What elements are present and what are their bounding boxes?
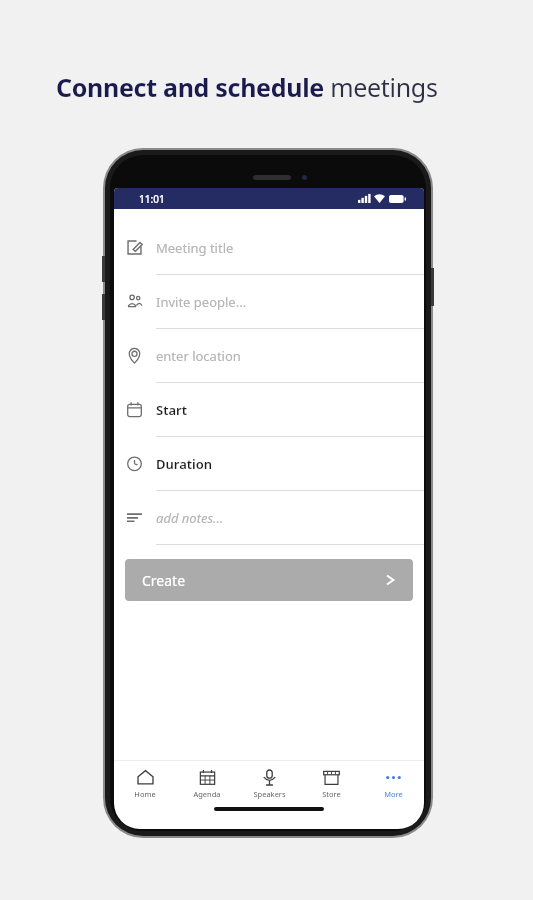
staticText: Duration xyxy=(156,455,213,473)
button[interactable]: Speakers xyxy=(238,761,300,807)
button[interactable]: Home xyxy=(114,761,176,807)
staticText: 11:01 xyxy=(139,192,165,206)
button[interactable]: enter location xyxy=(114,329,424,383)
button[interactable]: Start xyxy=(114,383,424,437)
staticText: Connect and schedule meetings xyxy=(56,70,438,104)
staticText: enter location xyxy=(156,347,241,365)
staticText: Agenda xyxy=(193,789,221,799)
button[interactable]: Duration xyxy=(114,437,424,491)
staticText: Invite people... xyxy=(156,293,247,311)
staticText: add notes... xyxy=(156,509,224,527)
staticText: Speakers xyxy=(253,789,286,799)
staticText: Store xyxy=(322,789,341,799)
staticText: Home xyxy=(134,789,156,799)
button[interactable]: Create xyxy=(125,559,413,601)
staticText: Create xyxy=(142,571,186,590)
button[interactable]: add notes... xyxy=(114,491,424,545)
button[interactable]: Meeting title xyxy=(114,221,424,275)
staticText: Meeting title xyxy=(156,239,234,257)
staticText: More xyxy=(384,789,403,799)
button[interactable]: More xyxy=(362,761,424,807)
button[interactable]: Invite people... xyxy=(114,275,424,329)
button[interactable]: Store xyxy=(300,761,362,807)
staticText: Start xyxy=(156,401,187,419)
button[interactable]: Agenda xyxy=(176,761,238,807)
